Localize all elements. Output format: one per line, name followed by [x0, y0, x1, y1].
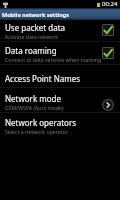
staticText: Activate data network	[5, 33, 59, 40]
button[interactable]: Network operators	[0, 114, 120, 137]
button[interactable]: Open network mode	[102, 99, 114, 111]
staticText: Mobile network settings	[2, 11, 70, 18]
staticText: Data roaming	[5, 45, 57, 56]
button[interactable]: Access Point Names	[0, 69, 120, 88]
button[interactable]: Use packet data	[0, 20, 120, 42]
staticText: Connect to data services when roaming	[5, 56, 102, 63]
button[interactable]: Toggle setting	[102, 24, 114, 36]
button[interactable]: Data roaming	[0, 43, 120, 65]
staticText: Network mode	[5, 93, 62, 104]
staticText: Use packet data	[5, 22, 66, 33]
staticText: GSM/WSPA (Auto mode)	[5, 104, 64, 111]
staticText: 00:24	[102, 0, 118, 8]
button[interactable]: Toggle setting	[102, 47, 114, 59]
staticText: Network operators	[5, 117, 77, 128]
staticText: Access Point Names	[5, 73, 81, 84]
button[interactable]: Network mode	[0, 90, 120, 113]
staticText: Select a network operator	[5, 128, 68, 135]
